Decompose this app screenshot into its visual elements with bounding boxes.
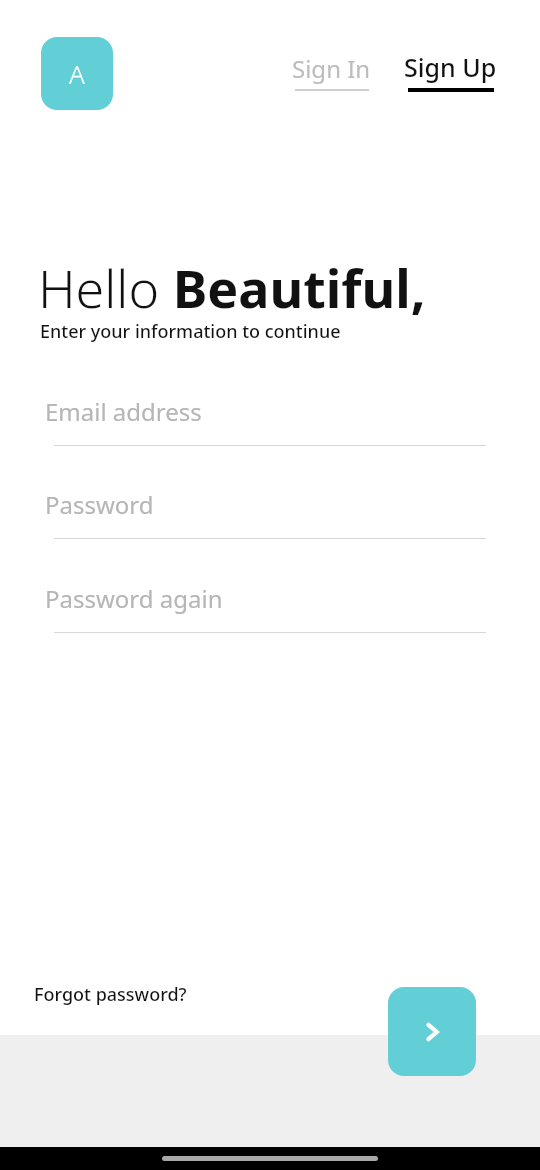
staticText: Enter your information to continue	[40, 319, 341, 344]
staticText: Hello Beautiful,	[38, 252, 426, 323]
button[interactable]: Password	[45, 488, 486, 539]
button[interactable]: A	[41, 37, 113, 110]
staticText: Sign In	[292, 52, 371, 85]
button[interactable]: Email address	[45, 395, 486, 446]
button[interactable]: Forgot password?	[34, 982, 187, 1007]
button[interactable]: Password again	[45, 582, 486, 633]
staticText: Email address	[45, 395, 202, 428]
button[interactable]: Sign In	[292, 52, 371, 91]
staticText: Password again	[45, 582, 223, 615]
button[interactable]: Sign Up	[404, 50, 497, 92]
staticText: A	[69, 56, 85, 91]
staticText: Sign Up	[404, 50, 497, 84]
staticText: Forgot password?	[34, 982, 187, 1007]
button[interactable]: Next	[388, 987, 476, 1076]
staticText: Password	[45, 488, 154, 521]
